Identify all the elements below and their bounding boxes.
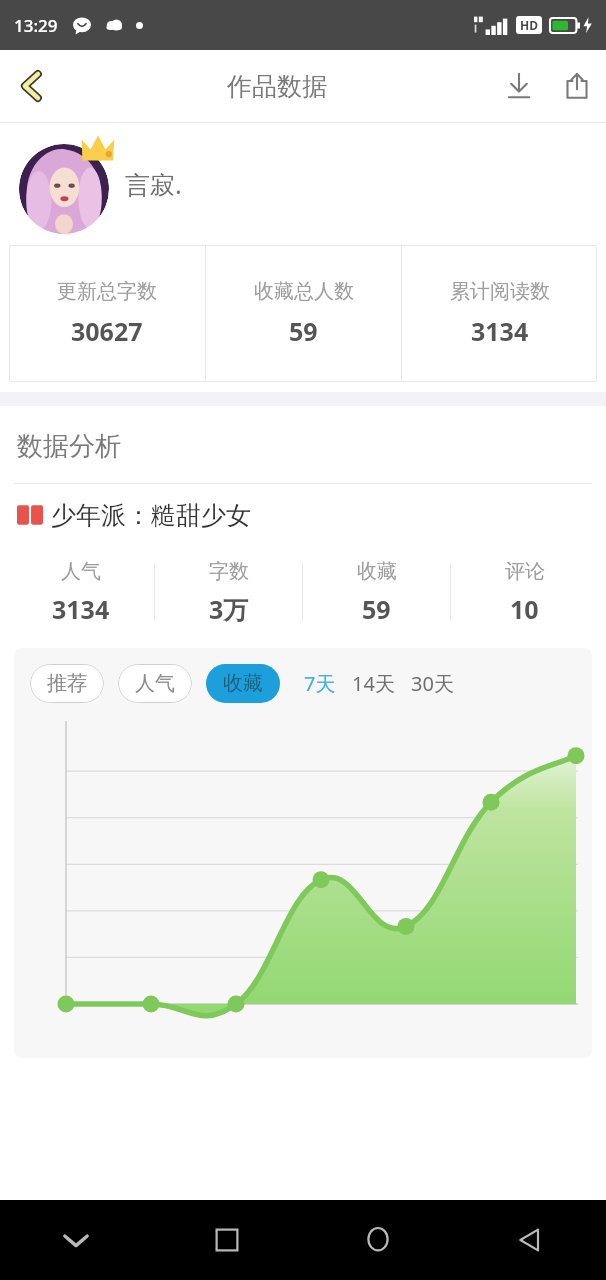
staticText: 3134 [52, 592, 110, 626]
button[interactable]: Home [302, 1200, 454, 1280]
staticText: 59 [289, 314, 318, 348]
staticText: 14天 [352, 670, 395, 697]
staticText: 收藏 [223, 671, 263, 696]
button[interactable]: 7天 [302, 664, 338, 703]
button[interactable]: 少年派：糙甜少女 [0, 484, 606, 546]
button[interactable]: 收藏 [206, 664, 280, 703]
button[interactable]: Download [490, 57, 548, 115]
staticText: 推荐 [47, 671, 87, 696]
button[interactable]: 推荐 [30, 664, 104, 703]
staticText: 数据分析 [17, 430, 121, 463]
staticText: 13:29 [14, 14, 58, 37]
button[interactable]: 言寂. [0, 123, 606, 245]
staticText: 收藏总人数 [254, 279, 354, 304]
button[interactable]: Back [0, 54, 64, 118]
button[interactable]: 14天 [350, 664, 397, 703]
staticText: 人气 [61, 559, 101, 584]
button[interactable]: 30天 [409, 664, 456, 703]
button[interactable]: Recents [151, 1200, 302, 1280]
button[interactable]: Back [454, 1200, 606, 1280]
staticText: 累计阅读数 [450, 279, 550, 304]
button[interactable]: 评论 [451, 546, 598, 638]
button[interactable]: 人气 [8, 546, 154, 638]
button[interactable]: 人气 [118, 664, 192, 703]
staticText: 更新总字数 [57, 279, 157, 304]
staticText: HD [520, 17, 538, 33]
button[interactable]: 收藏总人数 [206, 245, 401, 382]
button[interactable]: Share [548, 57, 606, 115]
staticText: 人气 [135, 671, 175, 696]
staticText: 3万 [209, 592, 249, 626]
staticText: 少年派：糙甜少女 [51, 500, 251, 531]
staticText: 作品数据 [227, 71, 327, 102]
button[interactable]: Hide [0, 1200, 151, 1280]
staticText: 评论 [505, 559, 545, 584]
staticText: 收藏 [357, 559, 397, 584]
button[interactable]: 更新总字数 [9, 245, 205, 382]
button[interactable]: 收藏 [303, 546, 450, 638]
staticText: 30627 [71, 314, 143, 348]
staticText: 59 [362, 592, 391, 626]
staticText: 3134 [471, 314, 529, 348]
staticText: 字数 [209, 559, 249, 584]
button[interactable]: 累计阅读数 [402, 245, 597, 382]
button[interactable]: 字数 [155, 546, 302, 638]
staticText: 10 [510, 592, 539, 626]
staticText: 言寂. [125, 167, 182, 201]
staticText: 7天 [304, 670, 336, 697]
staticText: 30天 [411, 670, 454, 697]
